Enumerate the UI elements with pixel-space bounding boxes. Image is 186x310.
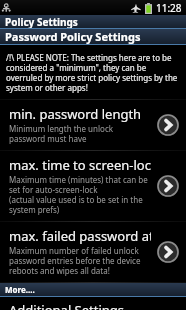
button[interactable]: Open xyxy=(155,239,181,265)
staticText: Maximum time (minutes) that can be set f… xyxy=(9,174,151,215)
button[interactable]: Additional Settings xyxy=(0,301,186,310)
staticText: Additional Settings xyxy=(9,301,125,310)
staticText: max. time to screen-lock xyxy=(9,156,151,174)
button[interactable]: Open xyxy=(155,112,181,138)
staticText: Policy Settings xyxy=(5,15,78,28)
staticText: min. password length xyxy=(9,105,142,123)
button[interactable]: Open xyxy=(155,173,181,199)
button[interactable]: max. time to screen-lock xyxy=(0,151,186,221)
staticText: Maximum number of failed unlock password… xyxy=(9,245,151,276)
staticText: More.... xyxy=(5,284,35,295)
staticText: max. failed password attempts xyxy=(9,227,151,245)
staticText: /!\ PLEASE NOTE: The settings here are t… xyxy=(6,52,181,93)
button[interactable]: max. failed password attempts xyxy=(0,222,186,282)
staticText: Minimum length the unlock password must … xyxy=(9,123,151,144)
button[interactable]: min. password length xyxy=(0,100,186,150)
staticText: Password Policy Settings xyxy=(5,29,141,44)
staticText: 11:28 xyxy=(156,1,182,15)
